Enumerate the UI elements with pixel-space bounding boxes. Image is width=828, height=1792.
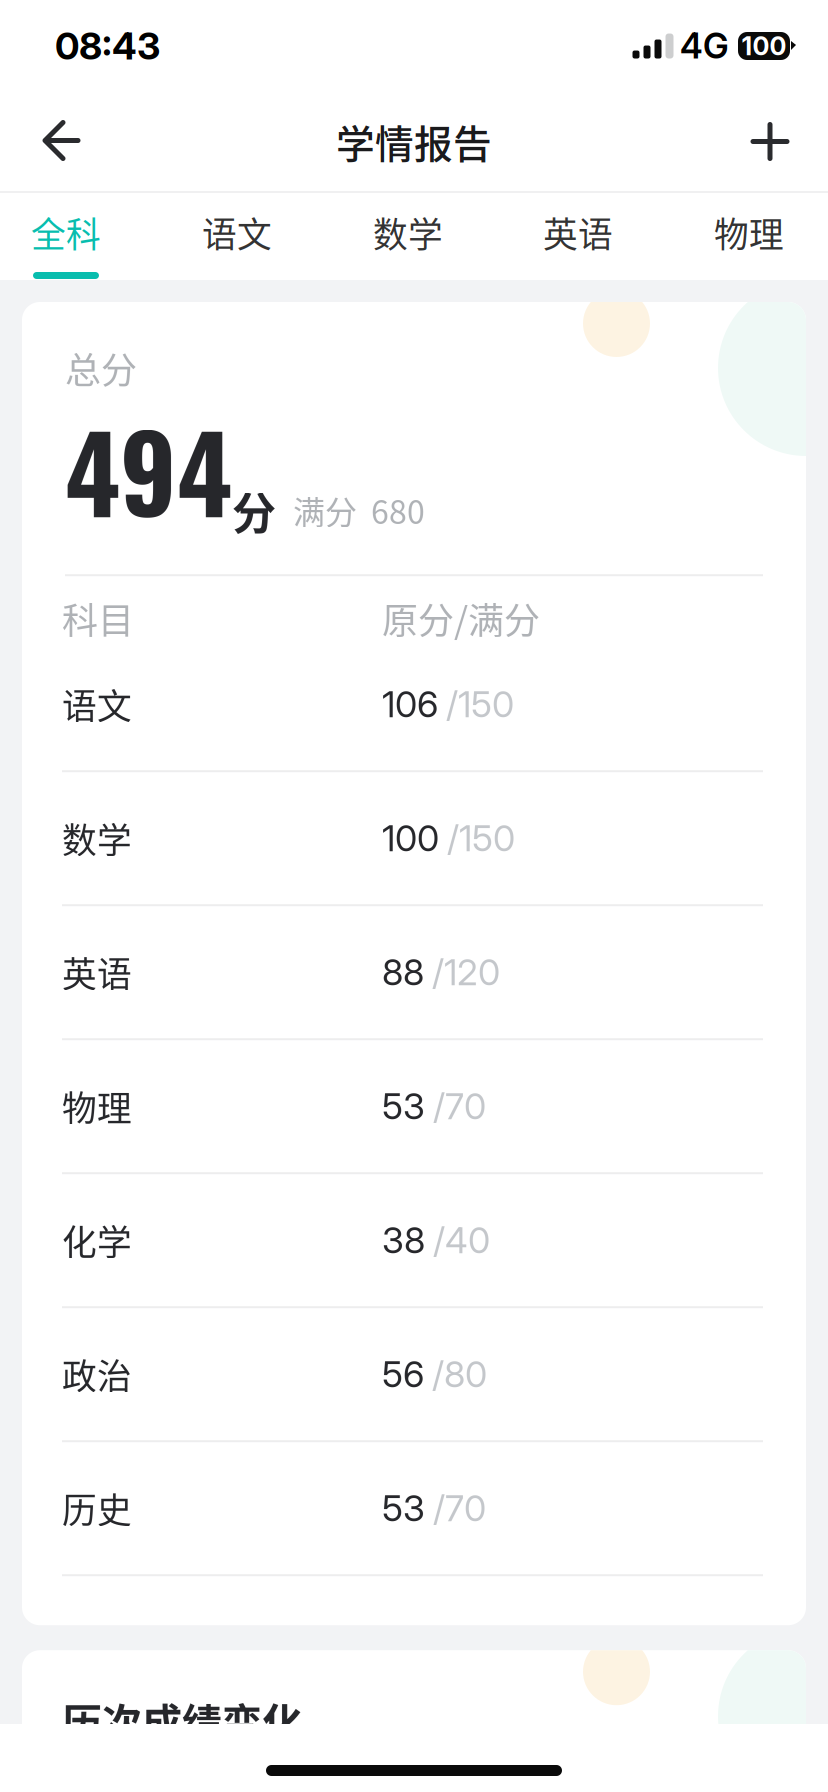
staticText: 4G — [680, 25, 729, 67]
staticText: 08:43 — [55, 23, 160, 69]
staticText: 88 — [382, 950, 424, 994]
staticText: 物理 — [714, 207, 784, 258]
staticText: 106 — [382, 682, 438, 726]
staticText: 494 — [65, 391, 232, 547]
staticText: 数学 — [373, 207, 443, 258]
staticText: /120 — [432, 950, 500, 994]
staticText: 语文 — [202, 207, 272, 258]
staticText: 满分 680 — [293, 487, 425, 533]
staticText: 语文 — [62, 679, 132, 729]
staticText: 英语 — [543, 207, 613, 258]
staticText: 数学 — [62, 813, 132, 863]
staticText: 38 — [382, 1218, 425, 1262]
staticText: 英语 — [62, 947, 132, 997]
staticText: 56 — [382, 1352, 424, 1396]
staticText: 政治 — [62, 1349, 132, 1399]
staticText: 53 — [382, 1486, 425, 1530]
button[interactable]: 全科 — [0, 193, 136, 280]
button[interactable]: 数学 — [338, 193, 478, 280]
button[interactable]: Add — [726, 94, 828, 188]
staticText: /80 — [432, 1352, 487, 1396]
staticText: /40 — [433, 1218, 490, 1262]
staticText: 全科 — [31, 207, 101, 258]
staticText: 历次成绩变化 — [62, 1691, 302, 1749]
staticText: 化学 — [62, 1215, 132, 1265]
staticText: 科目 — [62, 592, 134, 644]
staticText: 100 — [382, 816, 439, 860]
staticText: /70 — [433, 1486, 486, 1530]
staticText: 物理 — [62, 1081, 132, 1131]
staticText: 53 — [382, 1084, 425, 1128]
staticText: 历史 — [62, 1483, 132, 1533]
staticText: /150 — [446, 682, 514, 726]
staticText: 分 — [232, 478, 276, 542]
button[interactable]: 语文 — [167, 193, 307, 280]
staticText: 100 — [741, 31, 786, 61]
staticText: /70 — [433, 1084, 486, 1128]
button[interactable]: 英语 — [508, 193, 648, 280]
staticText: 总分 — [65, 342, 137, 394]
staticText: 学情报告 — [336, 113, 492, 169]
button[interactable]: Back — [0, 94, 108, 188]
staticText: /150 — [447, 816, 515, 860]
staticText: 原分/满分 — [382, 592, 540, 644]
button[interactable]: 物理 — [679, 193, 819, 280]
